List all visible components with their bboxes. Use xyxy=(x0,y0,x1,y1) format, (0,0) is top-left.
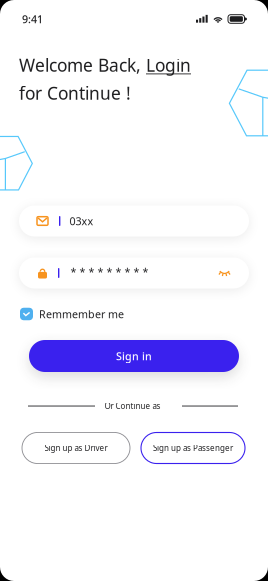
staticText: Welcome Back, Login xyxy=(19,53,191,76)
staticText: Sign up as Driver xyxy=(44,443,107,453)
staticText: 03xx xyxy=(69,214,93,228)
staticText: Sign up as Passenger xyxy=(153,443,233,453)
staticText: Or Continue as xyxy=(104,401,160,411)
button[interactable]: Sign up as Driver xyxy=(22,432,130,463)
staticText: * * * * * * * * * xyxy=(70,264,148,279)
button[interactable]: Sign up as Passenger xyxy=(141,432,245,463)
button[interactable]: Sign in xyxy=(29,340,239,372)
staticText: Remmember me xyxy=(39,307,124,321)
staticText: 9:41 xyxy=(22,12,43,26)
staticText: for Continue ! xyxy=(19,81,131,104)
staticText: Sign in xyxy=(116,349,152,363)
button[interactable]: Remmember me xyxy=(20,306,150,322)
